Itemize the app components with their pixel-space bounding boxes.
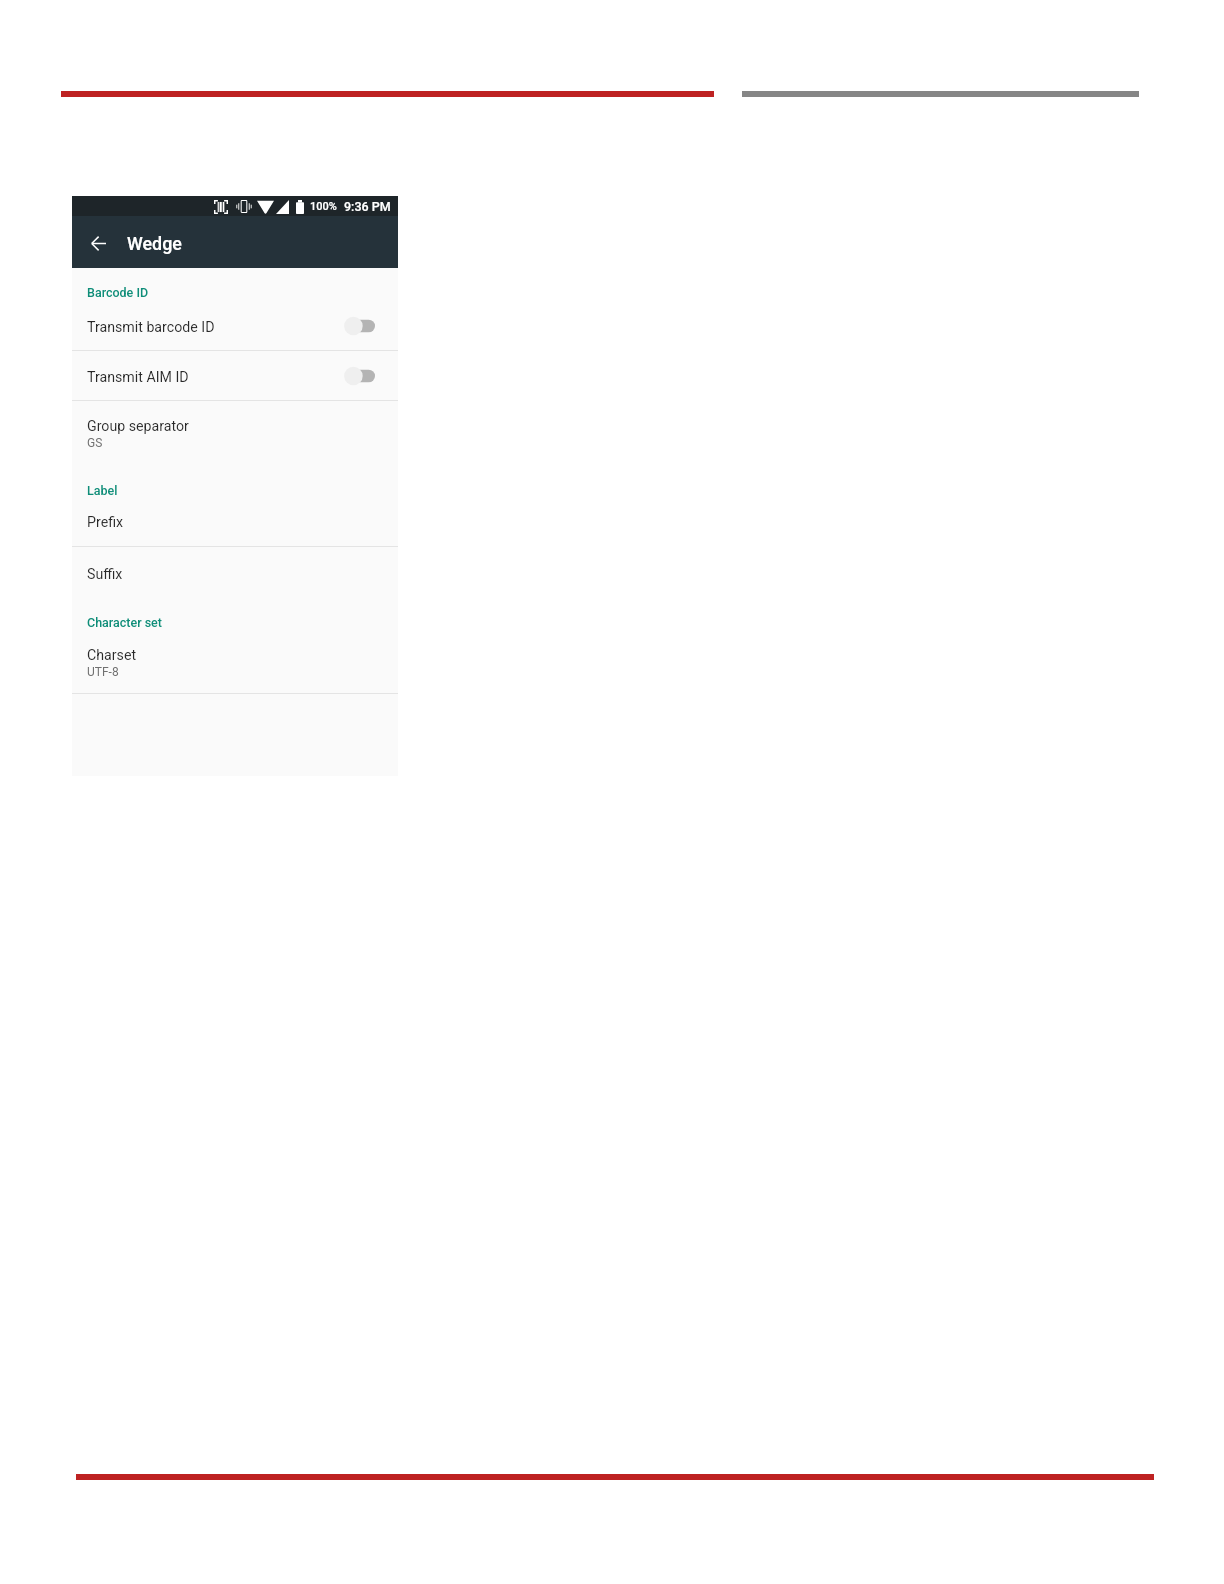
button[interactable]: Toggle, off	[344, 365, 380, 387]
staticText: UTF-8	[87, 665, 119, 679]
staticText: Wedge	[127, 233, 182, 254]
button[interactable]: Back	[76, 224, 121, 262]
button[interactable]: Charset	[72, 630, 398, 693]
button[interactable]: Toggle, off	[344, 315, 380, 337]
staticText: Character set	[87, 615, 162, 630]
button[interactable]: Transmit barcode ID	[72, 301, 398, 350]
button[interactable]: Prefix	[72, 497, 398, 546]
staticText: GS	[87, 436, 103, 450]
button[interactable]: Group separator	[72, 401, 398, 449]
staticText: 9:36 PM	[344, 199, 391, 214]
staticText: Transmit AIM ID	[87, 369, 189, 386]
staticText: Suffix	[87, 566, 123, 583]
staticText: Transmit barcode ID	[87, 319, 215, 336]
staticText: 100%	[310, 200, 337, 213]
staticText: Group separator	[87, 418, 189, 435]
staticText: Prefix	[87, 514, 124, 531]
button[interactable]: Suffix	[72, 547, 398, 599]
staticText: Charset	[87, 647, 137, 664]
staticText: Label	[87, 483, 118, 498]
staticText: Barcode ID	[87, 285, 149, 300]
button[interactable]: Transmit AIM ID	[72, 351, 398, 400]
